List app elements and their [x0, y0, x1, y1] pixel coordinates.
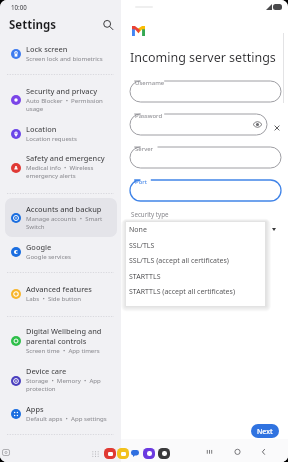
- other: Expand: [272, 228, 276, 231]
- staticText: parental controls: [26, 336, 87, 346]
- staticText: Google services: [26, 252, 71, 260]
- button[interactable]: Clear password: [271, 122, 283, 134]
- staticText: Storage • Memory • App: [26, 376, 101, 384]
- button[interactable]: Messages: [131, 450, 139, 457]
- staticText: Manage accounts • Smart: [26, 214, 103, 222]
- staticText: Security and privacy: [26, 86, 98, 96]
- staticText: Accounts and backup: [26, 204, 102, 214]
- button[interactable]: Files: [117, 448, 129, 459]
- staticText: Device care: [26, 366, 67, 376]
- staticText: STARTTLS (accept all certificates): [129, 287, 235, 297]
- button[interactable]: [5, 38, 117, 68]
- button[interactable]: [5, 398, 117, 428]
- button[interactable]: Back: [258, 448, 269, 459]
- button[interactable]: Search: [101, 18, 115, 32]
- staticText: None: [129, 225, 147, 235]
- button[interactable]: Camera: [158, 448, 170, 459]
- staticText: Digital Wellbeing and: [26, 326, 102, 336]
- staticText: Apps: [26, 404, 44, 414]
- staticText: Server: [135, 145, 154, 153]
- button[interactable]: [5, 118, 117, 148]
- staticText: Username: [135, 79, 165, 87]
- staticText: Password: [135, 112, 163, 120]
- button[interactable]: Browser: [143, 448, 155, 459]
- button[interactable]: [5, 320, 117, 360]
- staticText: usage: [26, 104, 44, 112]
- button[interactable]: STARTTLS (accept all certificates): [126, 284, 265, 300]
- staticText: Lock screen: [26, 44, 68, 54]
- button[interactable]: SSL/TLS (accept all certificates): [126, 253, 265, 269]
- staticText: Safety and emergency: [26, 153, 105, 163]
- button[interactable]: [5, 147, 117, 186]
- staticText: 10:00: [11, 3, 27, 11]
- button[interactable]: [5, 278, 117, 308]
- staticText: Default apps • App settings: [26, 414, 107, 422]
- staticText: Port: [135, 178, 147, 186]
- button[interactable]: [5, 236, 117, 266]
- button[interactable]: Home: [232, 448, 243, 459]
- staticText: SSL/TLS: [129, 241, 155, 251]
- button[interactable]: [5, 360, 117, 399]
- button[interactable]: [5, 198, 117, 237]
- staticText: Advanced features: [26, 284, 92, 294]
- staticText: Google: [26, 242, 52, 252]
- button[interactable]: None: [126, 222, 265, 238]
- staticText: Settings: [9, 17, 57, 33]
- staticText: Screen lock and biometrics: [26, 54, 103, 62]
- staticText: Screen time • App timers: [26, 346, 100, 354]
- button[interactable]: Next: [251, 424, 279, 438]
- staticText: protection: [26, 384, 56, 392]
- staticText: Security type: [131, 210, 169, 218]
- staticText: Location requests: [26, 134, 77, 142]
- staticText: emergency alerts: [26, 171, 76, 179]
- button[interactable]: Recent apps: [204, 448, 215, 459]
- staticText: Auto Blocker • Permission: [26, 96, 103, 104]
- button[interactable]: SSL/TLS: [126, 238, 265, 254]
- staticText: Location: [26, 124, 57, 134]
- staticText: Next: [257, 427, 273, 436]
- button[interactable]: Wallet: [2, 449, 10, 456]
- button[interactable]: Notes: [104, 448, 116, 459]
- staticText: Labs • Side button: [26, 294, 81, 302]
- staticText: STARTTLS: [129, 272, 161, 282]
- staticText: Switch: [26, 222, 45, 230]
- staticText: SSL/TLS (accept all certificates): [129, 256, 229, 266]
- staticText: Incoming server settings: [130, 49, 276, 66]
- button[interactable]: [5, 80, 117, 119]
- button[interactable]: STARTTLS: [126, 269, 265, 285]
- staticText: Medical info • Wireless: [26, 163, 94, 171]
